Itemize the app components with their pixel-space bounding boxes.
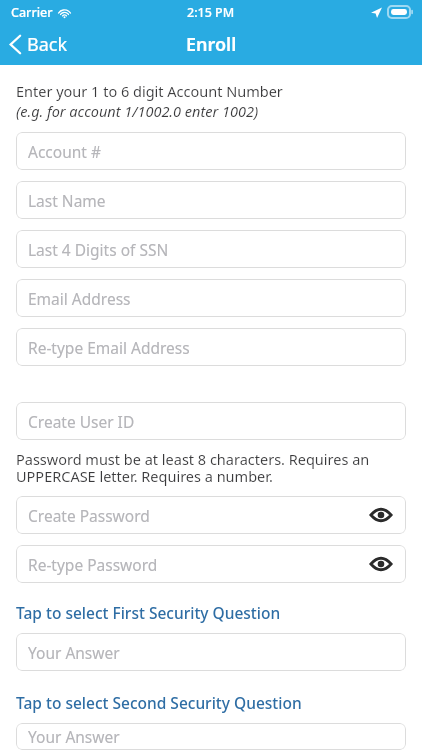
staticText: Create User ID: [28, 411, 394, 432]
staticText: Enter your 1 to 6 digit Account Number: [16, 81, 283, 101]
button[interactable]: Your Answer: [16, 633, 406, 671]
staticText: Account #: [28, 141, 394, 162]
button[interactable]: Re-type Email Address: [16, 328, 406, 366]
staticText: Last 4 Digits of SSN: [28, 239, 394, 260]
button[interactable]: Account #: [16, 132, 406, 170]
staticText: Tap to select First Security Question: [16, 602, 281, 623]
button[interactable]: Email Address: [16, 279, 406, 317]
button[interactable]: Create User ID: [16, 402, 406, 440]
staticText: Email Address: [28, 288, 394, 309]
staticText: Re-type Email Address: [28, 337, 394, 358]
button[interactable]: Last 4 Digits of SSN: [16, 230, 406, 268]
staticText: Carrier: [11, 4, 53, 21]
button[interactable]: Tap to select First Security Question: [16, 602, 406, 623]
staticText: Last Name: [28, 190, 394, 211]
staticText: Tap to select Second Security Question: [16, 692, 302, 713]
staticText: Create Password: [28, 505, 368, 526]
staticText: Your Answer: [28, 642, 394, 663]
staticText: Enroll: [186, 32, 237, 57]
button[interactable]: Your Answer: [16, 723, 406, 750]
button[interactable]: Re-type Password: [16, 545, 406, 583]
staticText: Re-type Password: [28, 554, 368, 575]
staticText: Password must be at least 8 characters. …: [16, 449, 406, 486]
button[interactable]: Show password: [368, 551, 394, 577]
button[interactable]: Tap to select Second Security Question: [16, 692, 406, 713]
staticText: Your Answer: [28, 726, 394, 747]
button[interactable]: Show password: [368, 502, 394, 528]
button[interactable]: Back: [0, 24, 80, 65]
staticText: (e.g. for account 1/1002.0 enter 1002): [16, 101, 259, 121]
button[interactable]: Create Password: [16, 496, 406, 534]
staticText: 2:15 PM: [187, 4, 235, 21]
button[interactable]: Last Name: [16, 181, 406, 219]
staticText: Back: [27, 32, 68, 57]
